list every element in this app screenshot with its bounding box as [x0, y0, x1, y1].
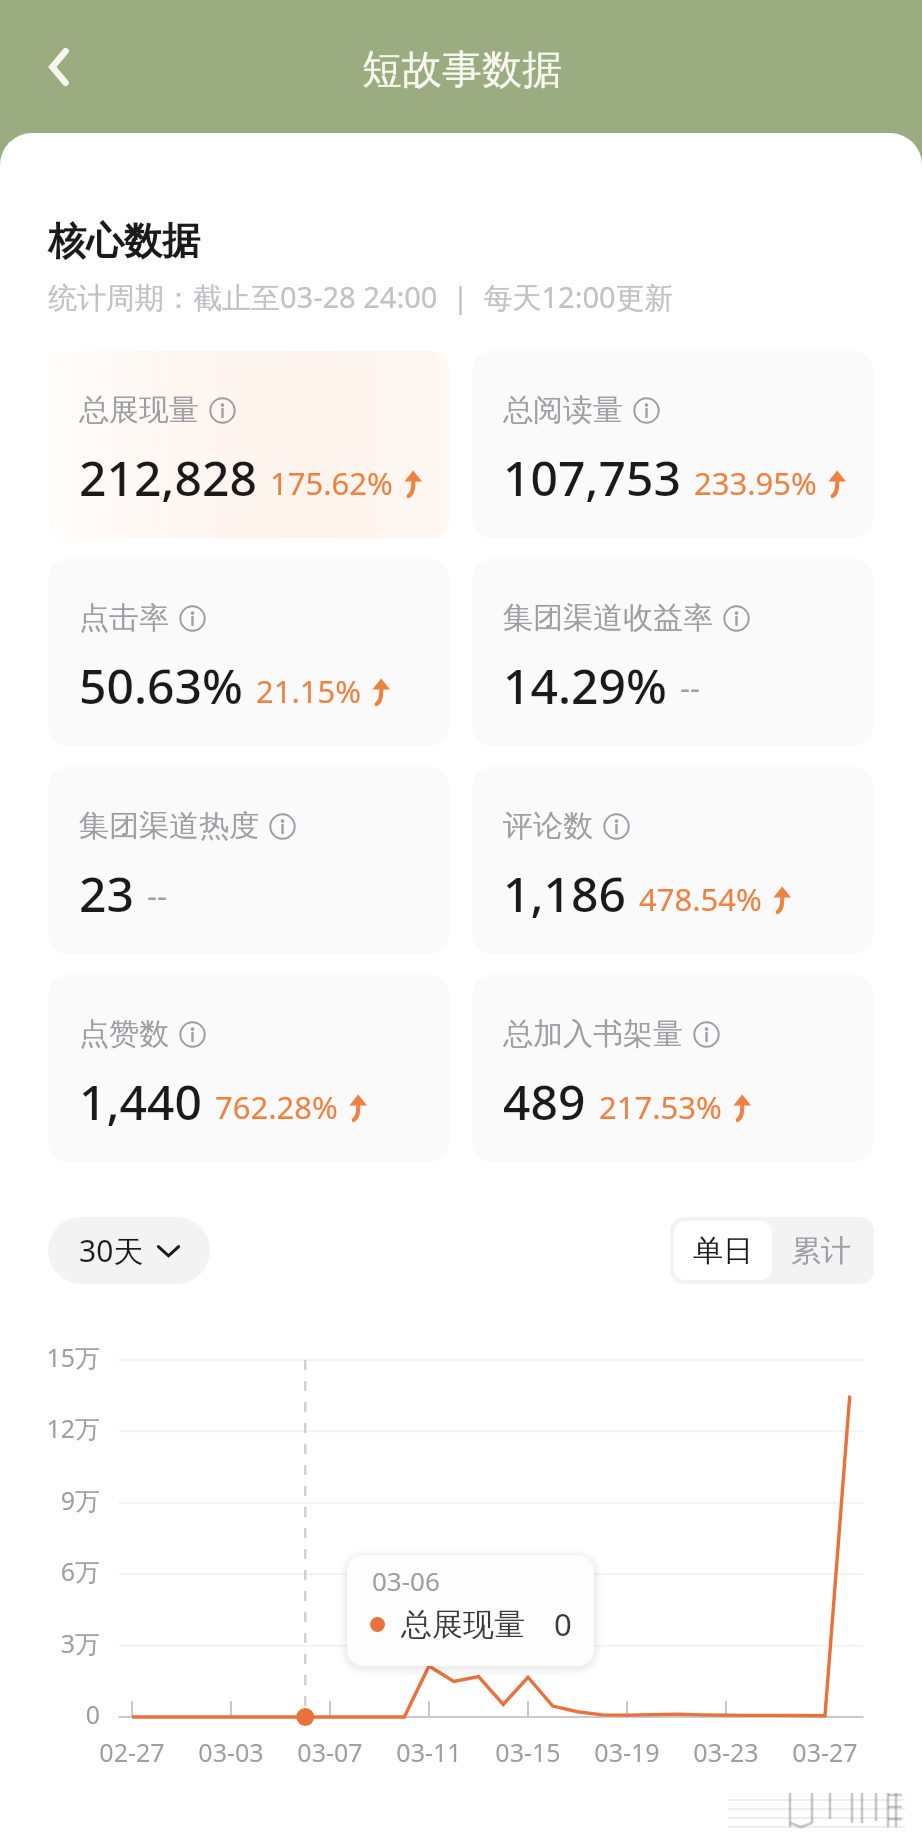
staticText: 212,828: [79, 445, 257, 510]
staticText: 总加入书架量: [503, 1015, 683, 1053]
staticText: 03-19: [577, 1735, 677, 1769]
staticText: 478.54%: [639, 878, 762, 920]
staticText: 集团渠道收益率: [503, 599, 713, 637]
staticText: 点赞数: [79, 1015, 169, 1053]
staticText: 489: [503, 1069, 586, 1134]
staticText: 03-06: [372, 1563, 440, 1598]
button[interactable]: 总阅读量: [472, 351, 873, 538]
staticText: 单日: [693, 1232, 753, 1270]
button[interactable]: 总加入书架量: [472, 975, 873, 1162]
staticText: 3万: [0, 1626, 100, 1660]
staticText: 03-03: [181, 1735, 281, 1769]
button[interactable]: 集团渠道收益率: [472, 559, 873, 746]
button[interactable]: 30天: [48, 1217, 210, 1284]
staticText: 9万: [0, 1483, 100, 1517]
staticText: 03-11: [379, 1735, 479, 1769]
staticText: 1,440: [79, 1069, 202, 1134]
staticText: 6万: [0, 1554, 100, 1588]
staticText: 统计周期：截止至03-28 24:00 | 每天12:00更新: [48, 277, 674, 317]
staticText: 集团渠道热度: [79, 807, 259, 845]
button[interactable]: 点击率: [48, 559, 449, 746]
staticText: 核心数据: [48, 217, 200, 265]
staticText: 0: [554, 1603, 572, 1645]
staticText: 762.28%: [215, 1086, 338, 1128]
staticText: 1,186: [503, 861, 626, 926]
staticText: 短故事数据: [362, 44, 562, 94]
staticText: 217.53%: [599, 1086, 722, 1128]
staticText: 50.63%: [79, 653, 243, 718]
staticText: 03-23: [676, 1735, 776, 1769]
staticText: 总阅读量: [503, 391, 623, 429]
staticText: --: [680, 666, 700, 708]
button[interactable]: 点赞数: [48, 975, 449, 1162]
staticText: 评论数: [503, 807, 593, 845]
staticText: 15万: [0, 1340, 100, 1374]
staticText: 点击率: [79, 599, 169, 637]
button[interactable]: Back: [13, 21, 105, 113]
staticText: 02-27: [82, 1735, 182, 1769]
button[interactable]: 总展现量: [48, 351, 449, 538]
staticText: 03-15: [478, 1735, 578, 1769]
staticText: 21.15%: [256, 670, 361, 712]
staticText: 0: [0, 1697, 100, 1731]
button[interactable]: 集团渠道热度: [48, 767, 449, 954]
button[interactable]: 评论数: [472, 767, 873, 954]
staticText: 总展现量: [79, 391, 199, 429]
staticText: 30天: [79, 1230, 144, 1271]
button[interactable]: 累计: [772, 1221, 870, 1280]
staticText: 累计: [791, 1232, 851, 1270]
staticText: 175.62%: [270, 462, 393, 504]
staticText: 12万: [0, 1411, 100, 1445]
staticText: 233.95%: [694, 462, 817, 504]
button[interactable]: 单日: [674, 1221, 772, 1280]
staticText: 03-07: [280, 1735, 380, 1769]
staticText: 总展现量: [401, 1605, 525, 1644]
staticText: 14.29%: [503, 653, 667, 718]
staticText: 23: [79, 861, 134, 926]
staticText: --: [147, 874, 167, 916]
staticText: 03-27: [775, 1735, 875, 1769]
staticText: 107,753: [503, 445, 681, 510]
